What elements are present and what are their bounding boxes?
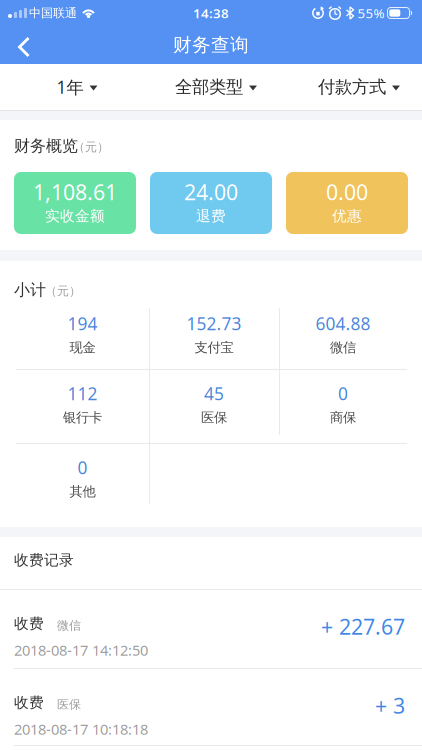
staticText: 医保 — [57, 697, 81, 712]
staticText: 微信 — [57, 618, 81, 633]
staticText: 194 — [67, 312, 97, 335]
staticText: 0 — [338, 382, 348, 405]
staticText: 2018-08-17 10:18:18 — [14, 719, 148, 739]
button[interactable]: 24.00 — [150, 172, 272, 234]
staticText: 其他 — [69, 483, 95, 500]
staticText: 实收金额 — [45, 207, 105, 225]
staticText: 0.00 — [326, 178, 368, 206]
button[interactable]: 1,108.61 — [14, 172, 136, 234]
staticText: 收费记录 — [14, 551, 74, 569]
button[interactable]: 付款方式 — [299, 64, 419, 110]
staticText: 支付宝 — [194, 339, 233, 356]
staticText: 商保 — [330, 409, 356, 426]
staticText: 财务查询 — [173, 33, 249, 56]
staticText: 现金 — [69, 339, 95, 356]
button[interactable]: Back — [2, 28, 46, 66]
staticText: 财务概览 — [14, 136, 78, 156]
button[interactable]: 收费 — [0, 668, 422, 747]
button[interactable]: 0.00 — [286, 172, 408, 234]
staticText: 14:38 — [193, 4, 229, 22]
staticText: 收费 — [14, 693, 44, 711]
staticText: （元） — [45, 284, 81, 298]
staticText: 医保 — [201, 409, 227, 426]
staticText: 604.88 — [315, 312, 370, 335]
staticText: 1年 — [56, 75, 83, 98]
staticText: 0 — [77, 456, 87, 479]
staticText: + 3 — [375, 691, 405, 720]
staticText: 1,108.61 — [33, 178, 117, 206]
staticText: 银行卡 — [63, 409, 102, 426]
staticText: 退费 — [196, 207, 226, 225]
staticText: 112 — [67, 382, 97, 405]
button[interactable]: 1年 — [17, 64, 137, 110]
staticText: （元） — [73, 140, 109, 154]
staticText: 付款方式 — [318, 76, 386, 98]
staticText: 45 — [204, 382, 224, 405]
staticText: 55% — [357, 4, 384, 22]
staticText: 中国联通 — [29, 6, 77, 20]
staticText: 全部类型 — [175, 76, 243, 98]
button[interactable]: 全部类型 — [156, 64, 276, 110]
button[interactable]: 收费 — [0, 589, 422, 668]
staticText: 微信 — [330, 339, 356, 356]
staticText: 收费 — [14, 614, 44, 632]
staticText: 优惠 — [332, 207, 362, 225]
staticText: 24.00 — [184, 178, 238, 206]
staticText: 小计 — [14, 280, 46, 300]
staticText: 152.73 — [186, 312, 241, 335]
staticText: 2018-08-17 14:12:50 — [14, 640, 148, 660]
staticText: + 227.67 — [321, 612, 405, 641]
